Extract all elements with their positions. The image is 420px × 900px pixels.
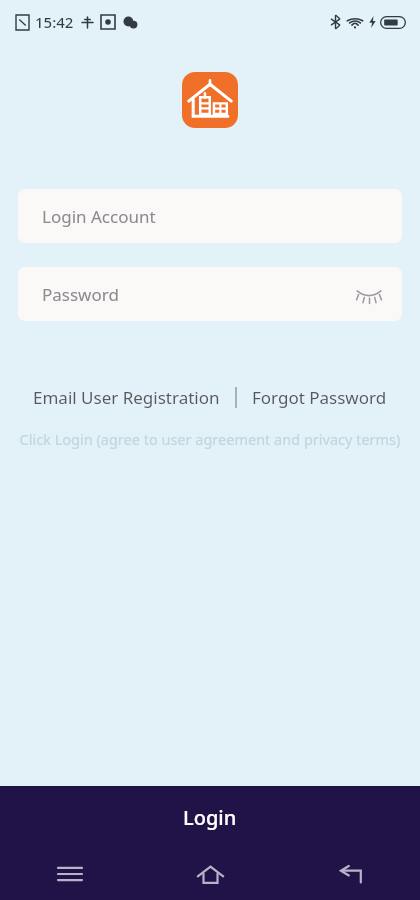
- button[interactable]: Email User Registration: [29, 380, 224, 415]
- button[interactable]: Home: [140, 848, 280, 900]
- staticText: Login: [183, 804, 237, 831]
- staticText: Click Login (agree to user agreement and…: [0, 429, 420, 449]
- staticText: Email User Registration: [33, 386, 220, 409]
- staticText: Forgot Password: [252, 386, 387, 409]
- button[interactable]: Back: [280, 848, 420, 900]
- staticText: Password: [42, 283, 119, 306]
- button[interactable]: Login Account: [18, 189, 402, 243]
- button[interactable]: Password: [18, 267, 402, 321]
- button[interactable]: Login: [0, 786, 420, 848]
- button[interactable]: Show password: [352, 277, 386, 311]
- button[interactable]: Recent apps: [0, 848, 140, 900]
- button[interactable]: Forgot Password: [248, 380, 391, 415]
- staticText: Login Account: [42, 205, 156, 228]
- button[interactable]: App logo: [182, 72, 238, 128]
- staticText: 15:42: [35, 12, 74, 32]
